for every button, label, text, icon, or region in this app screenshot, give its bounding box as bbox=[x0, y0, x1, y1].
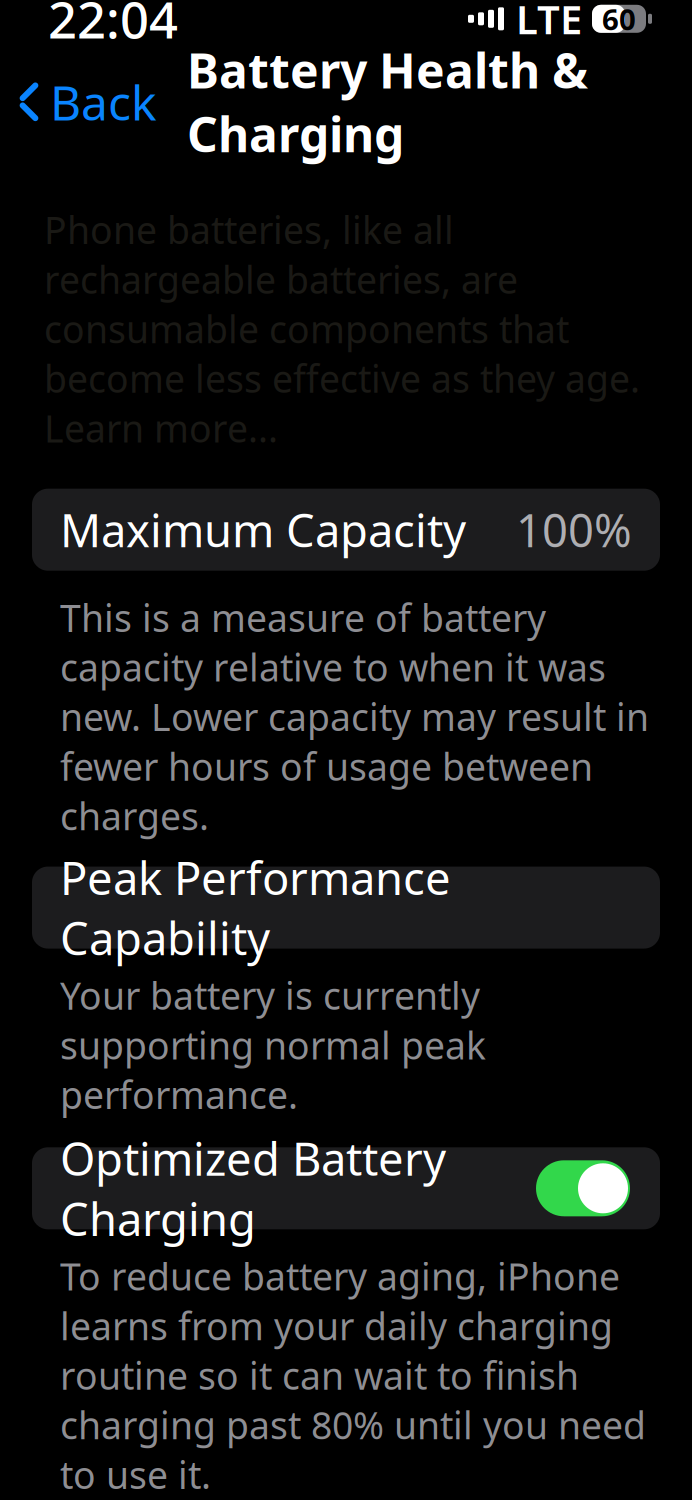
staticText: Peak Performance Capability bbox=[60, 847, 451, 968]
button[interactable]: Maximum Capacity bbox=[32, 489, 660, 571]
button[interactable]: Back bbox=[0, 60, 167, 144]
staticText: This is a measure of battery capacity re… bbox=[60, 593, 649, 841]
staticText: Optimized Battery Charging bbox=[60, 1128, 446, 1248]
staticText: Your battery is currently supporting nor… bbox=[60, 971, 486, 1119]
staticText: 60 bbox=[602, 0, 636, 38]
staticText: Phone batteries, like all rechargeable b… bbox=[44, 205, 640, 453]
staticText: Maximum Capacity bbox=[60, 500, 466, 560]
button[interactable]: Peak Performance Capability bbox=[32, 867, 660, 949]
button[interactable]: Optimized Battery Charging bbox=[32, 1147, 660, 1229]
staticText: To reduce battery aging, iPhone learns f… bbox=[60, 1251, 646, 1499]
staticText: 100% bbox=[516, 500, 632, 560]
staticText: LTE bbox=[516, 0, 582, 45]
staticText: 22:04 bbox=[48, 0, 178, 52]
staticText: Back bbox=[50, 70, 157, 134]
staticText: Battery Health & Charging bbox=[187, 38, 588, 166]
